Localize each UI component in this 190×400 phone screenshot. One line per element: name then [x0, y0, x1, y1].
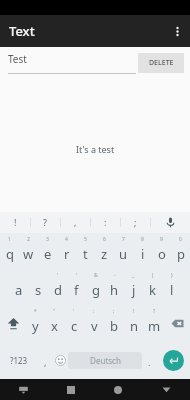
staticText: Deutsch	[90, 355, 121, 366]
staticText: It's a test	[76, 143, 115, 155]
button[interactable]: &	[86, 269, 105, 305]
staticText: m	[148, 317, 161, 335]
staticText: d	[54, 281, 62, 299]
button[interactable]: 9	[152, 233, 171, 269]
staticText: ?	[43, 216, 47, 228]
button[interactable]: "	[45, 305, 64, 341]
button[interactable]: 5	[76, 233, 95, 269]
staticText: )	[171, 272, 173, 279]
button[interactable]: '	[64, 305, 84, 341]
button[interactable]: Deutsch	[68, 352, 142, 369]
button[interactable]: !	[124, 305, 144, 341]
staticText: ;	[134, 216, 137, 228]
staticText: &	[94, 272, 98, 279]
button[interactable]: (	[143, 269, 162, 305]
staticText: 0	[179, 236, 182, 243]
staticText: *	[34, 308, 37, 315]
staticText: g	[92, 281, 100, 299]
staticText: 7	[122, 236, 125, 243]
button[interactable]: ,	[38, 341, 52, 379]
button[interactable]: _	[124, 269, 143, 305]
button[interactable]: ?	[30, 212, 60, 233]
staticText: .	[148, 356, 151, 368]
staticText: x	[51, 317, 58, 335]
button[interactable]: 1	[0, 233, 19, 269]
staticText: ’	[76, 272, 77, 279]
button[interactable]: 0	[171, 233, 190, 269]
button[interactable]: Home	[94, 379, 142, 400]
button[interactable]: Backspace	[164, 305, 190, 341]
button[interactable]: More options	[164, 18, 190, 44]
button[interactable]: 4	[57, 233, 76, 269]
button[interactable]: ’	[67, 269, 86, 305]
button[interactable]: -	[105, 269, 124, 305]
staticText: v	[91, 317, 98, 335]
button[interactable]: s	[29, 269, 48, 305]
staticText: :	[104, 216, 107, 228]
staticText: y	[32, 317, 39, 335]
staticText: 8	[141, 236, 144, 243]
button[interactable]: Back	[142, 379, 190, 400]
staticText: w	[23, 245, 34, 263]
staticText: r	[64, 245, 70, 263]
button[interactable]: 7	[114, 233, 133, 269]
staticText: s	[35, 281, 42, 299]
button[interactable]: ‘	[48, 269, 67, 305]
button[interactable]: Voice input	[150, 212, 190, 233]
staticText: c	[71, 317, 78, 335]
button[interactable]: :	[90, 212, 120, 233]
button[interactable]: ,	[60, 212, 90, 233]
button[interactable]: Shift	[0, 305, 26, 341]
button[interactable]: ;	[120, 212, 150, 233]
staticText: n	[130, 317, 139, 335]
staticText: z	[101, 245, 108, 263]
button[interactable]: a	[9, 269, 29, 305]
staticText: l	[170, 281, 174, 299]
staticText: !	[14, 216, 17, 228]
button[interactable]: 2	[19, 233, 38, 269]
staticText: ‘	[57, 272, 58, 279]
button[interactable]: .	[142, 341, 156, 379]
staticText: !	[133, 308, 135, 315]
staticText: :	[93, 308, 95, 315]
staticText: _	[132, 272, 135, 279]
staticText: Text	[9, 22, 35, 40]
staticText: o	[158, 245, 166, 263]
button[interactable]: !	[0, 212, 30, 233]
staticText: h	[110, 281, 119, 299]
staticText: 4	[65, 236, 68, 243]
button[interactable]: 8	[133, 233, 152, 269]
button[interactable]: Enter	[156, 341, 190, 379]
staticText: 2	[27, 236, 30, 243]
button[interactable]: ?123	[0, 341, 38, 379]
button[interactable]: )	[162, 269, 181, 305]
button[interactable]: *	[26, 305, 45, 341]
staticText: ?	[153, 308, 156, 315]
staticText: b	[110, 317, 118, 335]
button[interactable]: Hide keyboard	[0, 379, 47, 400]
staticText: f	[74, 281, 79, 299]
staticText: "	[53, 308, 56, 315]
button[interactable]: ?	[144, 305, 164, 341]
staticText: 5	[84, 236, 87, 243]
button[interactable]: Emoji	[52, 341, 68, 379]
button[interactable]: ;	[104, 305, 124, 341]
staticText: e	[44, 245, 52, 263]
staticText: 1	[8, 236, 11, 243]
staticText: q	[6, 245, 14, 263]
button[interactable]: Recents	[47, 379, 94, 400]
staticText: t	[83, 245, 88, 263]
staticText: 9	[160, 236, 163, 243]
button[interactable]: 6	[95, 233, 114, 269]
button[interactable]: :	[84, 305, 104, 341]
button[interactable]: 3	[38, 233, 57, 269]
staticText: j	[132, 281, 136, 299]
button[interactable]: Test	[8, 52, 136, 74]
staticText: 3	[46, 236, 49, 243]
staticText: '	[73, 308, 75, 315]
staticText: (	[152, 272, 154, 279]
staticText: a	[15, 281, 23, 299]
staticText: ;	[113, 308, 115, 315]
button[interactable]: DELETE	[138, 53, 184, 73]
staticText: ,	[44, 356, 47, 368]
